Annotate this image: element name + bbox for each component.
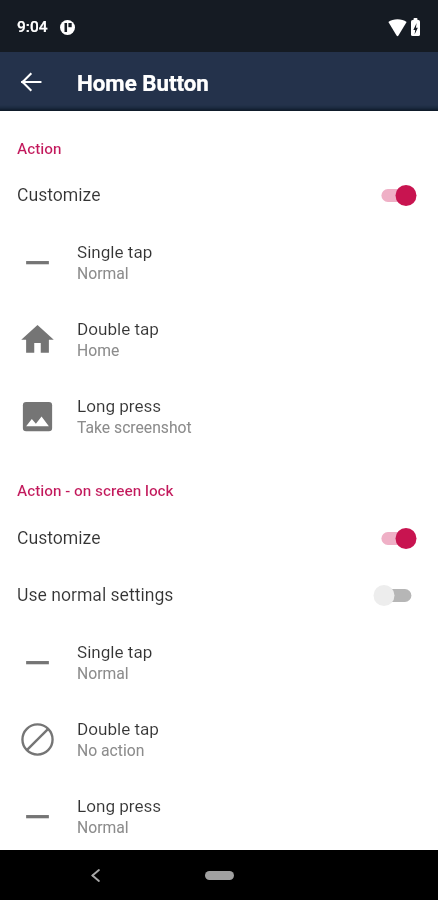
button[interactable]: Double tap	[0, 301, 438, 378]
button[interactable]: Customize	[0, 167, 438, 224]
staticText: Normal	[77, 664, 129, 682]
staticText: Use normal settings	[17, 585, 174, 606]
button[interactable]: Back	[75, 855, 115, 895]
staticText: No action	[77, 741, 145, 759]
button[interactable]: Home	[205, 871, 234, 880]
staticText: Double tap	[77, 719, 159, 739]
staticText: Long press	[77, 796, 162, 816]
staticText: Action - on screen lock	[17, 482, 174, 500]
staticText: Normal	[77, 264, 129, 282]
staticText: Double tap	[77, 319, 159, 339]
staticText: Normal	[77, 818, 129, 836]
staticText: Home Button	[77, 70, 209, 96]
button[interactable]: Single tap	[0, 624, 438, 701]
button[interactable]: Long press	[0, 378, 438, 455]
staticText: Take screenshot	[77, 418, 192, 436]
button[interactable]: Double tap	[0, 701, 438, 778]
button[interactable]: Long press	[0, 778, 438, 850]
staticText: Customize	[17, 528, 101, 549]
staticText: Single tap	[77, 642, 153, 662]
button[interactable]: Use normal settings	[0, 567, 438, 624]
button[interactable]: Customize	[0, 510, 438, 567]
staticText: Single tap	[77, 242, 153, 262]
staticText: Action	[17, 140, 62, 158]
button[interactable]: Back	[9, 60, 53, 104]
staticText: Home	[77, 341, 120, 359]
staticText: Long press	[77, 396, 162, 416]
staticText: Customize	[17, 185, 101, 206]
staticText: 9:04	[17, 18, 48, 36]
button[interactable]: Single tap	[0, 224, 438, 301]
